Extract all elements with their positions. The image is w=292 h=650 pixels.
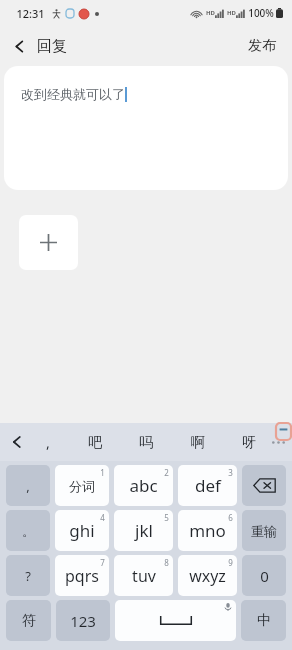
staticText: pqrs (65, 565, 99, 587)
button[interactable]: 吧 (82, 427, 108, 459)
staticText: 发布 (248, 37, 276, 55)
staticText: HD (227, 9, 236, 17)
button[interactable]: , (6, 465, 50, 506)
staticText: 6 (228, 512, 233, 523)
button[interactable]: 0 (242, 555, 286, 596)
button[interactable]: 重输 (242, 510, 286, 551)
button[interactable]: jkl (114, 510, 173, 551)
button[interactable]: 改到经典就可以了 (4, 66, 288, 190)
staticText: def (195, 474, 221, 497)
staticText: abc (129, 474, 158, 497)
button[interactable]: pqrs (55, 555, 109, 596)
button[interactable]: More options (265, 431, 292, 454)
staticText: 1 (100, 467, 105, 478)
button[interactable]: tuv (114, 555, 173, 596)
button[interactable]: mno (178, 510, 237, 551)
button[interactable]: wxyz (178, 555, 237, 596)
button[interactable]: Add attachment (19, 215, 78, 270)
staticText: , (46, 433, 50, 452)
staticText: 吧 (88, 434, 102, 452)
staticText: mno (189, 519, 226, 542)
staticText: 啊 (191, 434, 205, 452)
staticText: 7 (100, 557, 105, 568)
staticText: 5 (164, 512, 169, 523)
staticText: 吗 (139, 434, 153, 452)
staticText: 9 (228, 557, 233, 568)
staticText: 2 (164, 467, 169, 478)
staticText: ? (25, 567, 31, 585)
staticText: 12:31 (16, 6, 45, 21)
staticText: 。 (22, 523, 35, 539)
staticText: HD (206, 9, 215, 17)
staticText: 3 (228, 467, 233, 478)
button[interactable]: 啊 (185, 427, 211, 459)
button[interactable]: Back (0, 427, 32, 457)
staticText: 分词 (69, 478, 95, 494)
staticText: 中 (257, 612, 271, 630)
staticText: 符 (22, 612, 36, 630)
button[interactable]: Back (0, 29, 79, 64)
staticText: 100% (248, 6, 274, 20)
button[interactable]: Delete (242, 465, 286, 506)
staticText: 回复 (37, 37, 67, 56)
button[interactable]: 发布 (232, 28, 292, 64)
button[interactable]: 符 (6, 600, 51, 641)
button[interactable]: ghi (55, 510, 109, 551)
button[interactable]: 。 (6, 510, 50, 551)
button[interactable]: 呀 (236, 427, 262, 459)
button[interactable]: , (40, 426, 56, 459)
staticText: 8 (164, 557, 169, 568)
staticText: 0 (260, 566, 269, 586)
staticText: tuv (132, 565, 156, 587)
button[interactable]: 吗 (133, 427, 159, 459)
button[interactable]: abc (114, 465, 173, 506)
staticText: 改到经典就可以了 (21, 86, 125, 102)
staticText: 123 (70, 611, 96, 631)
button[interactable]: 123 (56, 600, 110, 641)
button[interactable]: 分词 (55, 465, 109, 506)
button[interactable]: def (178, 465, 237, 506)
staticText: wxyz (189, 565, 226, 587)
button[interactable]: ? (6, 555, 50, 596)
staticText: 呀 (242, 434, 256, 452)
button[interactable]: Space (115, 600, 236, 641)
staticText: 重输 (251, 523, 277, 539)
staticText: jkl (135, 519, 153, 542)
button[interactable]: 中 (241, 600, 286, 641)
staticText: 4 (100, 512, 105, 523)
staticText: ghi (69, 519, 95, 542)
staticText: , (26, 477, 30, 495)
